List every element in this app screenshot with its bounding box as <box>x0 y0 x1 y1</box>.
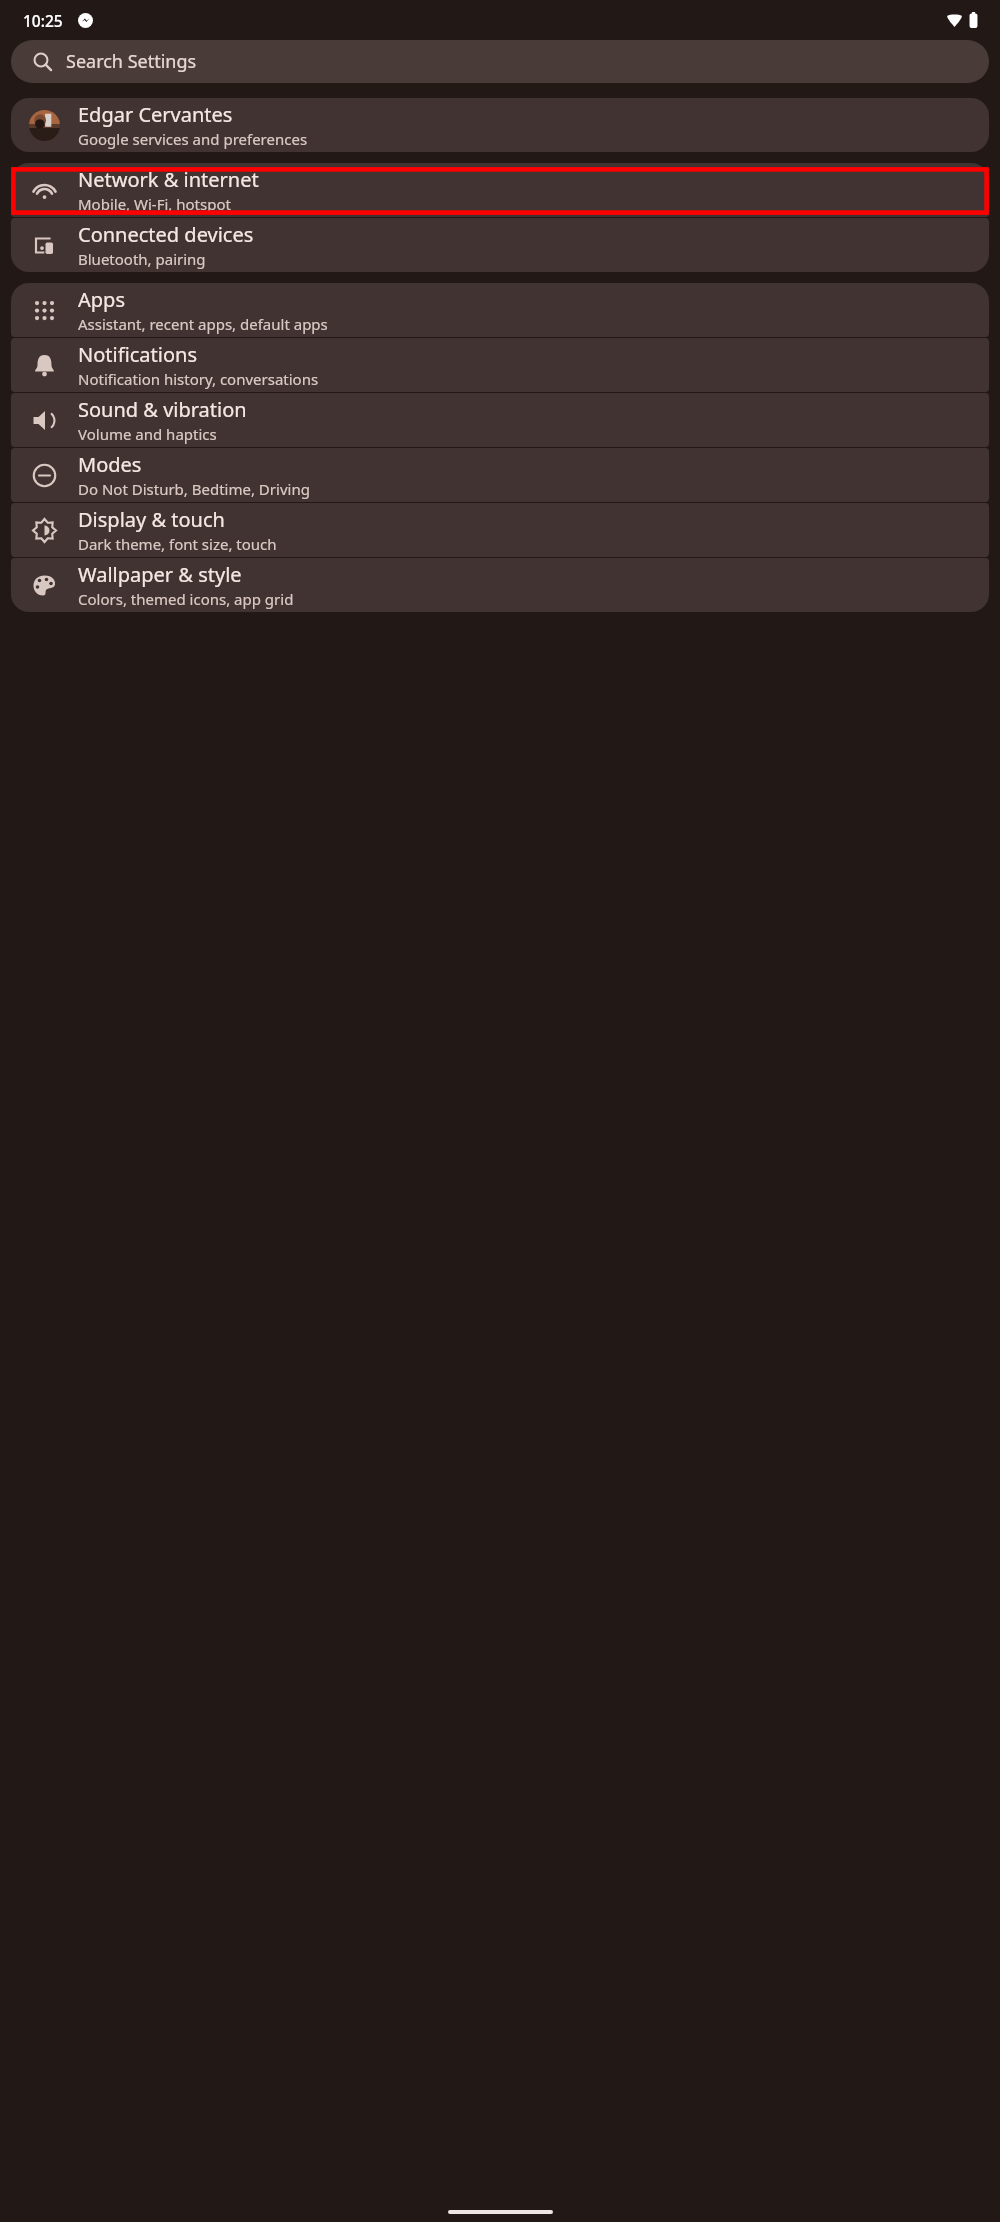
other: Messenger notification <box>78 13 93 28</box>
button[interactable]: Edgar Cervantes <box>11 98 989 152</box>
button[interactable]: Apps <box>11 283 989 337</box>
staticText: Display & touch <box>78 506 225 533</box>
staticText: Wallpaper & style <box>78 561 242 588</box>
staticText: Apps <box>78 286 125 313</box>
button[interactable]: Search Settings <box>11 40 989 83</box>
button[interactable]: Network & internet <box>11 163 989 217</box>
staticText: Colors, themed icons, app grid <box>78 589 294 609</box>
staticText: Search Settings <box>66 49 197 74</box>
staticText: Do Not Disturb, Bedtime, Driving <box>78 479 310 499</box>
button[interactable]: Display & touch <box>11 503 989 557</box>
other: Battery <box>969 12 978 28</box>
staticText: Notification history, conversations <box>78 369 319 389</box>
button[interactable]: Wallpaper & style <box>11 558 989 612</box>
staticText: Assistant, recent apps, default apps <box>78 314 328 334</box>
staticText: Volume and haptics <box>78 424 217 444</box>
staticText: Bluetooth, pairing <box>78 249 206 269</box>
button[interactable]: Sound & vibration <box>11 393 989 447</box>
button[interactable]: Modes <box>11 448 989 502</box>
staticText: Modes <box>78 451 142 478</box>
staticText: 10:25 <box>23 10 63 31</box>
staticText: Mobile, Wi-Fi, hotspot <box>78 194 231 214</box>
staticText: Sound & vibration <box>78 396 247 423</box>
staticText: Network & internet <box>78 166 259 193</box>
other: Wi-Fi <box>947 13 962 28</box>
staticText: Dark theme, font size, touch <box>78 534 277 554</box>
staticText: Google services and preferences <box>78 129 308 149</box>
button[interactable]: Notifications <box>11 338 989 392</box>
staticText: Edgar Cervantes <box>78 101 233 128</box>
button[interactable]: Connected devices <box>11 218 989 272</box>
staticText: Notifications <box>78 341 197 368</box>
staticText: Connected devices <box>78 221 254 248</box>
